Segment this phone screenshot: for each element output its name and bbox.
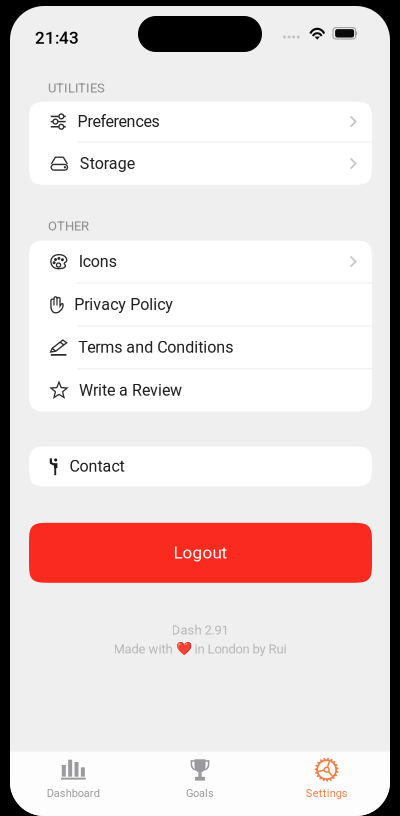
button[interactable]: Storage (29, 142, 372, 185)
button[interactable]: Settings (263, 752, 390, 816)
button[interactable]: Preferences (29, 102, 372, 142)
staticText: Logout (173, 543, 227, 563)
staticText: Made with ❤️ in London by Rui (113, 641, 286, 657)
staticText: OTHER (48, 218, 89, 234)
staticText: Preferences (77, 112, 159, 131)
button[interactable]: Contact (29, 446, 372, 486)
staticText: Icons (79, 252, 117, 271)
button[interactable]: Dashboard (10, 752, 137, 816)
button[interactable]: Terms and Conditions (29, 326, 372, 368)
staticText: Settings (306, 787, 348, 800)
button[interactable]: Logout (29, 523, 372, 583)
staticText: Privacy Policy (74, 295, 173, 314)
staticText: Contact (70, 457, 125, 476)
button[interactable]: Privacy Policy (29, 283, 372, 326)
button[interactable]: Write a Review (29, 369, 372, 411)
staticText: Write a Review (79, 381, 182, 400)
staticText: 21:43 (35, 28, 79, 48)
button[interactable]: Icons (29, 240, 372, 283)
staticText: UTILITIES (48, 80, 105, 96)
staticText: Dash 2.91 (171, 622, 228, 638)
staticText: Storage (80, 154, 135, 173)
staticText: Terms and Conditions (78, 338, 233, 357)
staticText: Goals (186, 787, 214, 800)
button[interactable]: Goals (137, 752, 263, 816)
staticText: Dashboard (47, 787, 100, 800)
